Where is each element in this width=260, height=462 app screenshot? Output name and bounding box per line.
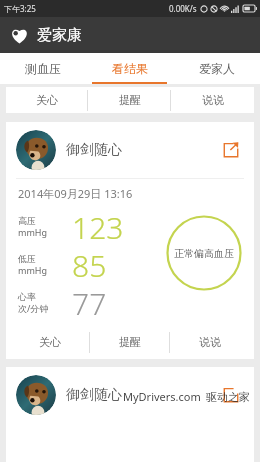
staticText: 关心 <box>36 93 58 107</box>
staticText: 正常偏高血压 <box>174 247 234 260</box>
button[interactable]: 测血压 <box>0 53 86 84</box>
button[interactable]: 关心 <box>10 329 90 355</box>
button[interactable]: 关心 <box>6 87 88 113</box>
staticText: 看结果 <box>112 61 148 76</box>
staticText: 下午3:25 <box>4 3 36 14</box>
staticText: 爱家康 <box>37 26 82 45</box>
button[interactable]: 看结果 <box>86 53 173 84</box>
staticText: 心率 <box>18 291 36 302</box>
staticText: 85 <box>72 245 107 283</box>
button[interactable]: 说说 <box>170 329 250 355</box>
button[interactable]: 提醒 <box>88 87 171 113</box>
staticText: 高压 <box>18 215 36 226</box>
staticText: 说说 <box>202 93 224 107</box>
staticText: 低压 <box>18 253 36 264</box>
staticText: 77 <box>72 283 107 321</box>
button[interactable]: 爱家人 <box>173 53 260 84</box>
staticText: 123 <box>72 207 124 245</box>
staticText: 爱家人 <box>199 61 235 76</box>
staticText: mmHg <box>18 264 48 276</box>
staticText: 2014年09月29日 13:16 <box>18 186 133 201</box>
staticText: 次/分钟 <box>18 302 49 314</box>
staticText: 驱动之家 <box>206 390 250 404</box>
staticText: 关心 <box>39 335 61 349</box>
staticText: 测血压 <box>25 61 61 76</box>
staticText: MyDrivers.com <box>123 389 201 404</box>
staticText: 提醒 <box>119 335 141 349</box>
staticText: 说说 <box>199 335 221 349</box>
button[interactable]: Share <box>218 382 244 408</box>
staticText: mmHg <box>18 226 48 238</box>
staticText: 御剑随心 <box>66 141 218 159</box>
staticText: 提醒 <box>119 93 141 107</box>
staticText: 0.00K/s <box>169 3 197 14</box>
button[interactable]: 提醒 <box>90 329 170 355</box>
staticText: 御剑随心 <box>66 386 218 404</box>
button[interactable]: 说说 <box>171 87 254 113</box>
button[interactable]: Share <box>218 137 244 163</box>
